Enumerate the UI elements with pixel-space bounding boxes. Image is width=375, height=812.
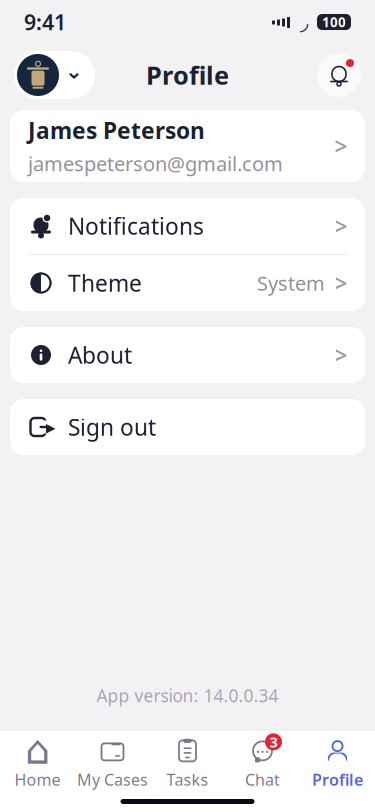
button[interactable]: Switch organization xyxy=(14,51,95,99)
button[interactable]: Profile xyxy=(300,730,375,790)
staticText: ⌄ xyxy=(65,59,83,83)
button[interactable]: Tasks xyxy=(150,730,225,790)
staticText: Profile xyxy=(312,769,363,790)
staticText: ◞ xyxy=(300,10,308,34)
button[interactable]: Theme xyxy=(10,255,365,311)
button[interactable]: 3 xyxy=(225,730,300,790)
button[interactable]: About xyxy=(10,327,365,383)
staticText: Chat xyxy=(245,769,280,790)
staticText: ⌂ xyxy=(25,727,50,773)
staticText: System xyxy=(257,270,325,296)
staticText: jamespeterson@gmail.com xyxy=(28,150,283,177)
staticText: Notifications xyxy=(68,211,204,241)
staticText: Home xyxy=(14,769,60,790)
button[interactable]: My Cases xyxy=(75,730,150,790)
button[interactable]: James Peterson xyxy=(10,110,365,182)
button[interactable]: Notifications xyxy=(10,198,365,254)
staticText: Tasks xyxy=(166,769,208,790)
staticText: App version: 14.0.0.34 xyxy=(96,684,278,707)
staticText: > xyxy=(334,131,347,161)
staticText: > xyxy=(334,211,347,241)
staticText: Theme xyxy=(68,268,142,298)
staticText: ▸ xyxy=(45,416,55,438)
staticText: > xyxy=(334,268,347,298)
button[interactable]: Notifications xyxy=(317,53,361,97)
button[interactable]: ▸ xyxy=(10,399,365,455)
staticText: 100 xyxy=(322,13,346,31)
staticText: 9:41 xyxy=(24,8,66,36)
staticText: My Cases xyxy=(77,769,148,790)
staticText: James Peterson xyxy=(28,115,205,145)
staticText: 3 xyxy=(269,732,277,752)
button[interactable]: ⌂ xyxy=(0,730,75,790)
staticText: Profile xyxy=(146,58,229,92)
staticText: > xyxy=(334,340,347,370)
staticText: Sign out xyxy=(68,412,156,442)
staticText: About xyxy=(68,340,132,370)
